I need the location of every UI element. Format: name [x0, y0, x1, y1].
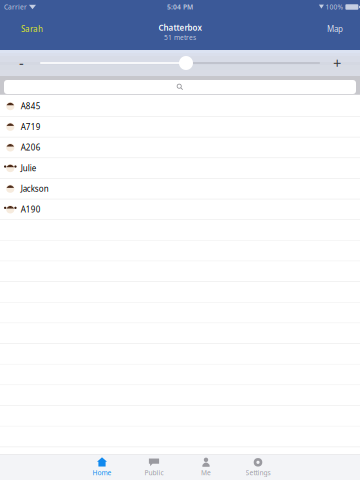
staticText: 100%	[325, 3, 343, 11]
staticText: Julie	[21, 163, 37, 173]
button[interactable]: Home	[76, 455, 128, 480]
button[interactable]: Public	[128, 455, 180, 480]
button[interactable]: Map	[319, 16, 355, 48]
staticText: A719	[21, 121, 41, 132]
staticText: Public	[144, 468, 163, 477]
staticText: Sarah	[21, 24, 43, 34]
button[interactable]: Sarah	[5, 16, 51, 48]
staticText: Carrier	[4, 3, 27, 11]
button[interactable]: A845	[0, 96, 360, 117]
button[interactable]: A719	[0, 117, 360, 137]
button[interactable]: Julie	[0, 158, 360, 179]
staticText: Settings	[245, 468, 270, 477]
staticText: A845	[21, 101, 41, 111]
staticText: Jackson	[21, 183, 49, 194]
button[interactable]: A206	[0, 137, 360, 158]
button[interactable]: Search	[4, 78, 356, 94]
staticText: 51 metres	[164, 33, 196, 42]
button[interactable]: Me	[180, 455, 232, 480]
staticText: +	[333, 53, 341, 73]
staticText: Chatterbox	[158, 22, 201, 33]
staticText: A190	[21, 204, 41, 215]
staticText: Home	[92, 468, 111, 477]
button[interactable]: Jackson	[0, 179, 360, 199]
staticText: Me	[201, 468, 211, 477]
staticText: -	[19, 53, 24, 73]
staticText: A206	[21, 142, 41, 153]
button[interactable]: Settings	[232, 455, 284, 480]
staticText: Map	[327, 24, 343, 34]
staticText: 5:04 PM	[167, 3, 193, 11]
button[interactable]: A190	[0, 199, 360, 220]
